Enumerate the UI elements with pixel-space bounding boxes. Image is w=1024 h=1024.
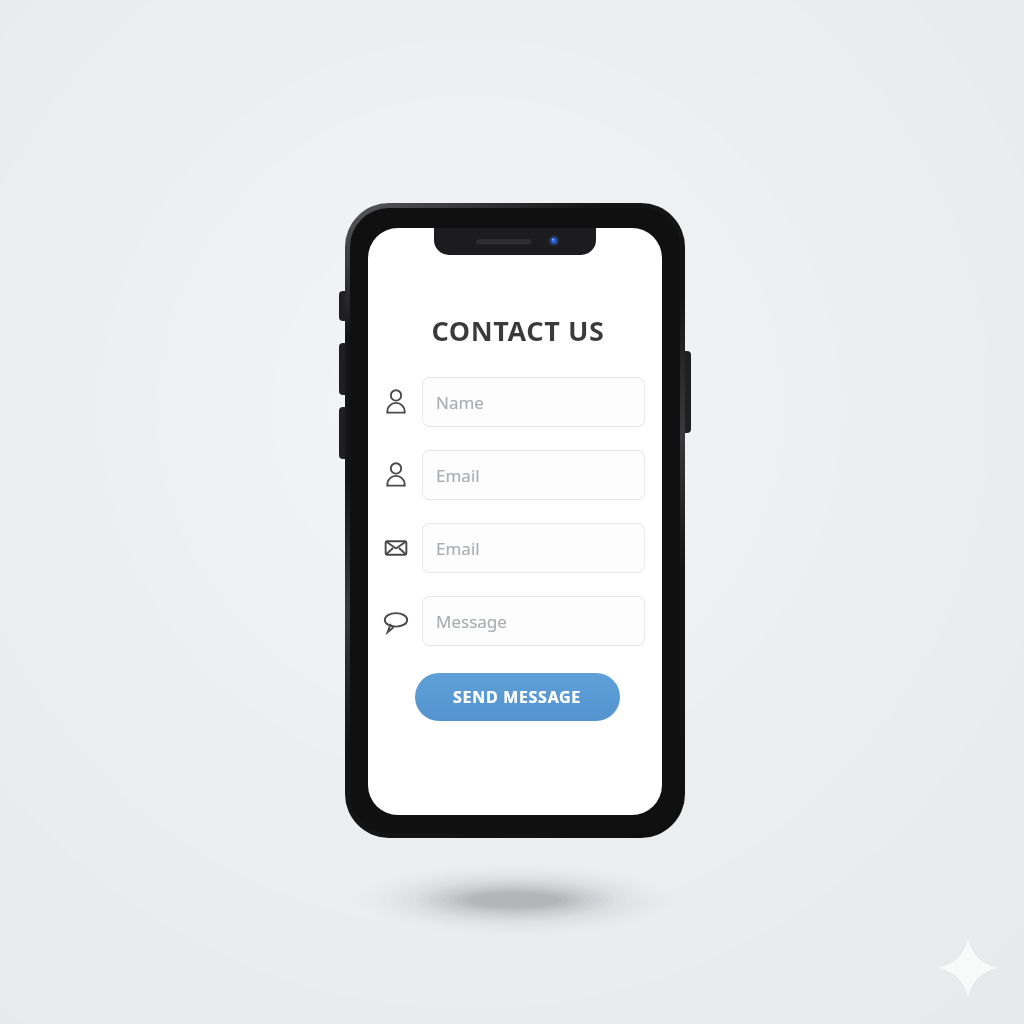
button[interactable]: Message xyxy=(422,596,645,646)
other: Message xyxy=(380,605,412,637)
staticText: Name xyxy=(436,391,484,414)
other: Person xyxy=(380,386,412,418)
other: Email xyxy=(380,532,412,564)
staticText: Email xyxy=(436,537,480,560)
staticText: Email xyxy=(436,464,480,487)
button[interactable]: Email xyxy=(422,523,645,573)
other: Person xyxy=(380,459,412,491)
button[interactable]: Person xyxy=(368,450,662,500)
button[interactable]: Message xyxy=(368,596,662,646)
staticText: SEND MESSAGE xyxy=(453,686,582,708)
button[interactable]: Email xyxy=(422,450,645,500)
button[interactable]: SEND MESSAGE xyxy=(415,673,620,721)
button[interactable]: Person xyxy=(368,377,662,427)
button[interactable]: Email xyxy=(368,523,662,573)
staticText: Message xyxy=(436,610,507,633)
button[interactable]: Name xyxy=(422,377,645,427)
staticText: CONTACT US xyxy=(371,312,662,349)
